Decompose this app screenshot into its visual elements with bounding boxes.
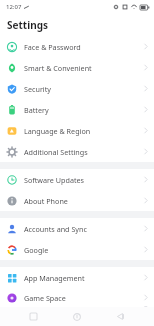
staticText: Settings	[7, 18, 48, 32]
staticText: Software Updates	[24, 175, 85, 185]
staticText: Google	[24, 245, 49, 255]
button[interactable]: About Phone	[0, 190, 154, 211]
staticText: Language & Region	[24, 126, 91, 136]
button[interactable]: Security	[0, 78, 154, 99]
button[interactable]: Software Updates	[0, 169, 154, 190]
button[interactable]: Additional Settings	[0, 141, 154, 162]
button[interactable]: App Management	[0, 267, 154, 288]
staticText: About Phone	[24, 196, 68, 206]
button[interactable]: Home	[66, 307, 88, 326]
staticText: Face & Password	[24, 42, 81, 52]
button[interactable]: Google	[0, 239, 154, 260]
button[interactable]: Face & Password	[0, 36, 154, 57]
button[interactable]: Smart & Convenient	[0, 57, 154, 78]
staticText: Accounts and Sync	[24, 224, 87, 234]
staticText: Smart & Convenient	[24, 63, 92, 73]
staticText: 12:07	[6, 3, 22, 11]
button[interactable]: Battery	[0, 99, 154, 120]
staticText: Additional Settings	[24, 147, 88, 157]
staticText: Security	[24, 84, 51, 94]
staticText: App Management	[24, 273, 85, 283]
staticText: Battery	[24, 105, 49, 115]
button[interactable]: Accounts and Sync	[0, 218, 154, 239]
button[interactable]: Language & Region	[0, 120, 154, 141]
staticText: Game Space	[24, 293, 66, 303]
button[interactable]: Recent apps	[22, 307, 44, 326]
button[interactable]: Game Space	[0, 288, 154, 307]
button[interactable]: Back	[110, 307, 132, 326]
